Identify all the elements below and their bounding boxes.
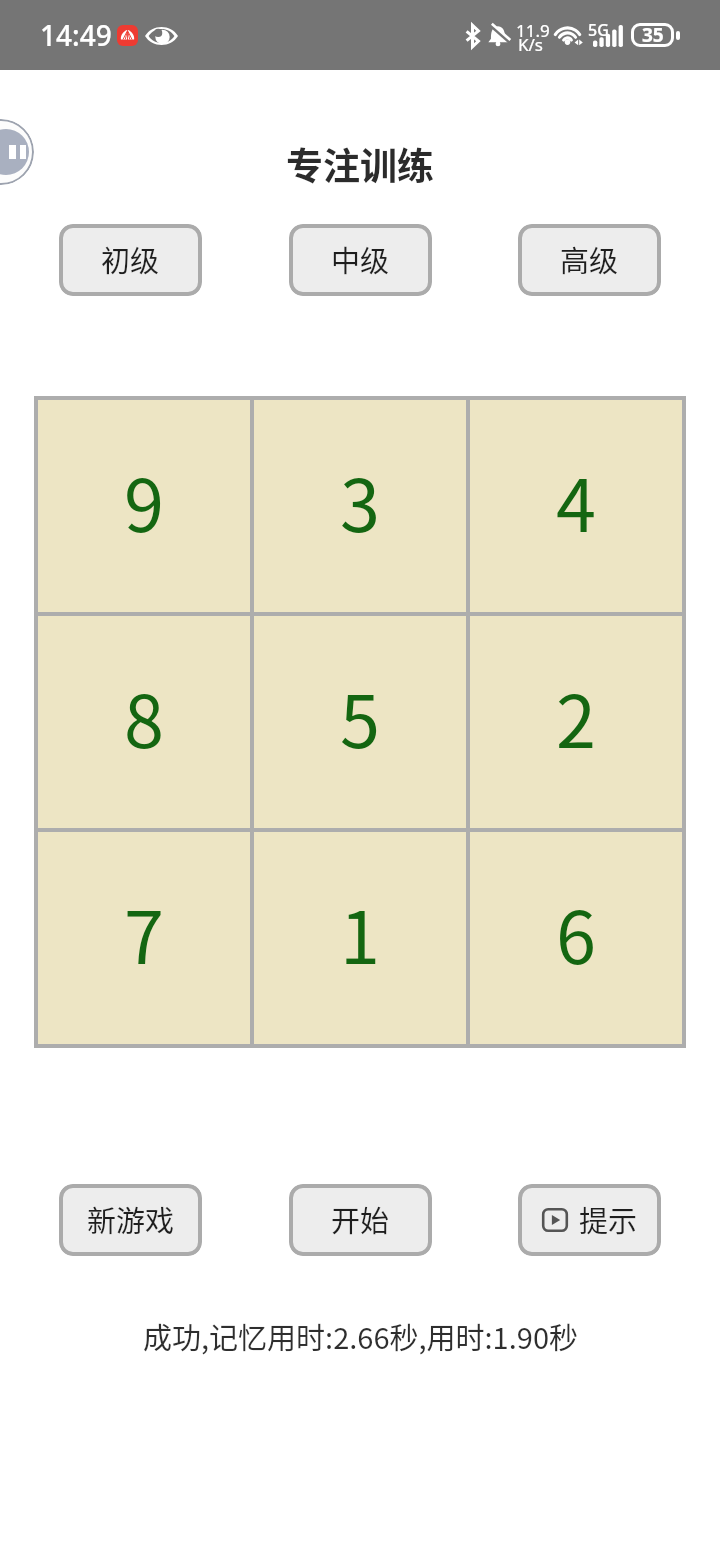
staticText: 3 (340, 448, 380, 552)
button[interactable]: 1 (254, 832, 466, 1044)
button[interactable]: 提示 (518, 1184, 661, 1256)
button[interactable]: 开始 (289, 1184, 432, 1256)
staticText: 4 (556, 448, 596, 552)
staticText: 6 (556, 880, 596, 984)
button[interactable]: 6 (470, 832, 682, 1044)
staticText: 中级 (331, 238, 390, 280)
staticText: K/s (518, 33, 543, 56)
button[interactable]: 8 (38, 616, 250, 828)
button[interactable]: 中级 (289, 224, 432, 296)
button[interactable]: 新游戏 (59, 1184, 202, 1256)
button[interactable]: 4 (470, 400, 682, 612)
button[interactable]: 2 (470, 616, 682, 828)
button[interactable]: 初级 (59, 224, 202, 296)
button[interactable]: 5 (254, 616, 466, 828)
staticText: 成功,记忆用时:2.66秒,用时:1.90秒 (143, 1315, 578, 1357)
staticText: 5 (340, 664, 380, 768)
button[interactable]: 7 (38, 832, 250, 1044)
staticText: 7 (124, 880, 164, 984)
staticText: 开始 (331, 1198, 390, 1240)
staticText: 专注训练 (286, 137, 434, 187)
staticText: 5G (588, 19, 609, 41)
staticText: 35 (642, 22, 664, 46)
staticText: 11.9 (516, 19, 550, 42)
staticText: 新游戏 (87, 1198, 175, 1240)
staticText: 初级 (101, 238, 160, 280)
button[interactable]: 3 (254, 400, 466, 612)
staticText: 14:49 (40, 16, 112, 54)
button[interactable]: 9 (38, 400, 250, 612)
staticText: 高级 (560, 238, 619, 280)
button[interactable]: Pause floating control (0, 119, 34, 185)
button[interactable]: 高级 (518, 224, 661, 296)
staticText: 9 (124, 448, 164, 552)
staticText: 提示 (579, 1198, 638, 1240)
staticText: 1 (340, 880, 380, 984)
staticText: 2 (556, 664, 596, 768)
staticText: 8 (124, 664, 164, 768)
